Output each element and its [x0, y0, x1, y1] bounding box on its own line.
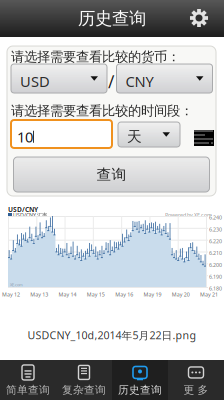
- staticText: USD/CNY 汇率: [13, 211, 47, 219]
- button[interactable]: 复杂查询: [56, 360, 112, 400]
- staticText: CNY: [125, 71, 153, 91]
- staticText: 6.210: [209, 249, 222, 257]
- staticText: 6.220: [209, 238, 222, 245]
- staticText: May 21: [200, 291, 218, 298]
- staticText: 6.240: [209, 214, 222, 221]
- staticText: May 20: [172, 291, 190, 298]
- button[interactable]: Settings: [188, 7, 210, 29]
- staticText: USD: [20, 71, 50, 91]
- staticText: May 13: [30, 291, 48, 298]
- button[interactable]: 历史查询: [112, 360, 168, 400]
- button[interactable]: CNY: [116, 64, 212, 93]
- staticText: 6.180: [209, 285, 222, 292]
- staticText: 更 多: [183, 383, 208, 396]
- staticText: XE.com: [10, 282, 23, 287]
- staticText: Powered by XE.com: [165, 211, 212, 219]
- staticText: USD/CNY: [8, 205, 38, 214]
- staticText: 6.230: [209, 226, 222, 233]
- staticText: May 12: [2, 291, 20, 298]
- button[interactable]: USD: [11, 64, 107, 93]
- button[interactable]: 简单查询: [0, 360, 56, 400]
- staticText: USDCNY_10d,2014年5月22日.png: [27, 328, 196, 342]
- button[interactable]: 更 多: [168, 360, 224, 400]
- staticText: 历史查询: [78, 8, 146, 29]
- button[interactable]: 查询: [13, 157, 209, 192]
- staticText: May 16: [115, 291, 133, 298]
- staticText: 请选择需要查看比较的时间段：: [11, 102, 193, 119]
- staticText: May 14: [59, 291, 77, 298]
- staticText: /: [108, 70, 114, 93]
- staticText: 简单查询: [6, 383, 50, 396]
- staticText: 6.200: [209, 261, 222, 268]
- staticText: 6.190: [209, 273, 222, 280]
- staticText: May 15: [87, 291, 105, 298]
- staticText: 查询: [96, 165, 126, 183]
- staticText: 历史查询: [118, 383, 162, 396]
- staticText: 天: [127, 127, 142, 145]
- staticText: 10: [17, 127, 33, 146]
- staticText: 复杂查询: [62, 383, 106, 396]
- staticText: 请选择需要查看比较的货币：: [11, 48, 180, 65]
- staticText: May 19: [143, 291, 161, 298]
- button[interactable]: 天: [118, 122, 180, 147]
